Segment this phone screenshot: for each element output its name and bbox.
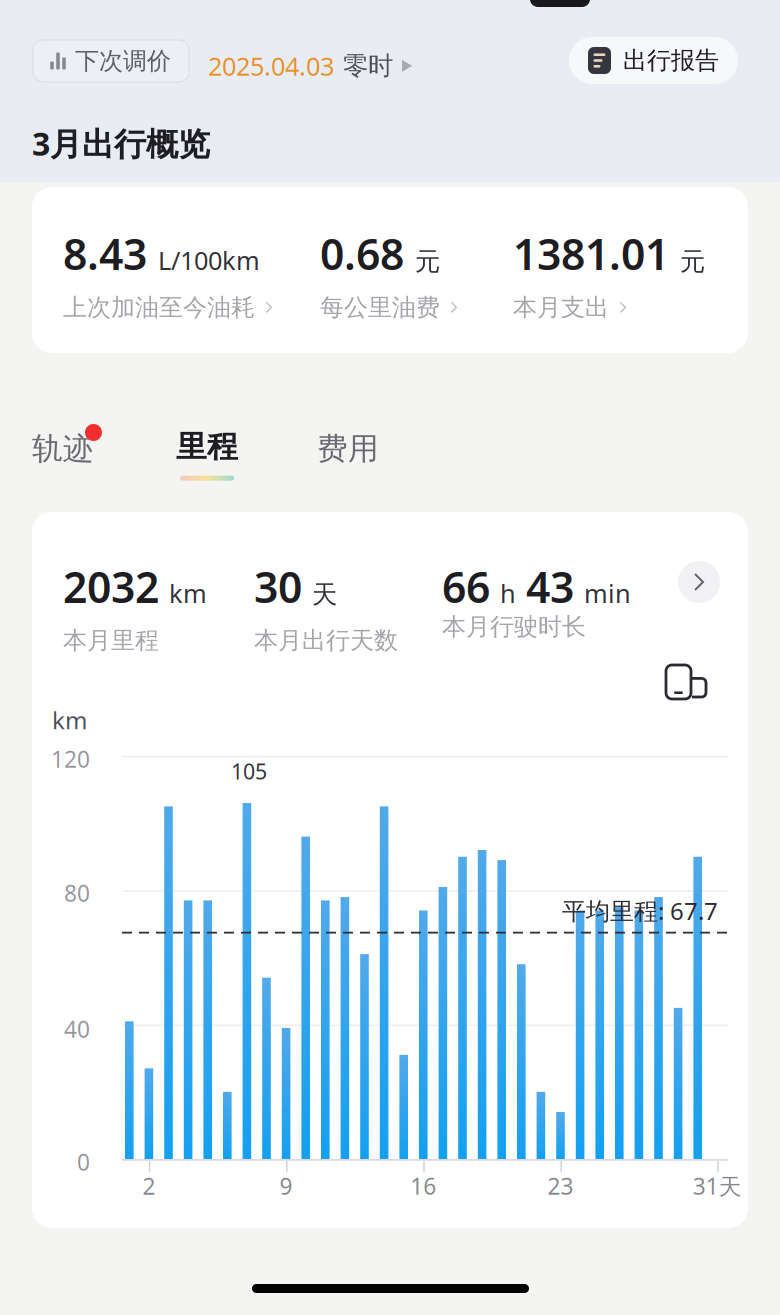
staticText: 平均里程: 67.7: [562, 895, 718, 926]
button[interactable]: 里程: [176, 428, 238, 481]
button[interactable]: 下次调价: [33, 40, 189, 82]
staticText: 40: [64, 1014, 90, 1044]
button[interactable]: 8.43: [63, 225, 273, 322]
button[interactable]: 1381.01: [513, 225, 705, 322]
staticText: 0.68: [320, 225, 404, 282]
button[interactable]: 更多: [678, 561, 720, 603]
staticText: 出行报告: [623, 46, 719, 75]
staticText: 43: [526, 558, 574, 615]
button[interactable]: 轨迹: [32, 424, 102, 468]
staticText: 下次调价: [75, 46, 171, 76]
staticText: km: [169, 576, 207, 610]
staticText: 本月出行天数: [254, 626, 398, 655]
staticText: 元: [680, 246, 705, 277]
staticText: 轨迹: [32, 430, 94, 468]
staticText: km: [52, 704, 87, 736]
staticText: 66: [442, 558, 490, 615]
staticText: h: [500, 576, 516, 610]
staticText: 23: [547, 1171, 573, 1201]
staticText: min: [584, 576, 631, 610]
staticText: 本月里程: [63, 626, 159, 655]
staticText: 105: [231, 757, 267, 785]
staticText: 16: [410, 1171, 436, 1201]
button[interactable]: 旋转屏幕: [666, 665, 710, 701]
button[interactable]: 2025.04.03: [208, 49, 412, 83]
button[interactable]: 0.68: [320, 225, 458, 322]
staticText: L/100km: [158, 243, 260, 277]
staticText: 1381.01: [513, 225, 669, 282]
staticText: 里程: [176, 428, 238, 466]
staticText: 每公里油费: [320, 293, 440, 322]
button[interactable]: 出行报告: [569, 37, 738, 84]
staticText: 元: [415, 246, 440, 277]
staticText: 3月出行概览: [32, 122, 210, 164]
button[interactable]: 费用: [317, 430, 379, 468]
staticText: 费用: [317, 430, 379, 468]
staticText: 天: [312, 579, 337, 610]
staticText: 本月行驶时长: [442, 612, 586, 641]
staticText: 120: [51, 744, 90, 774]
staticText: 2: [142, 1171, 155, 1201]
staticText: 上次加油至今油耗: [63, 293, 255, 322]
staticText: 本月支出: [513, 293, 609, 322]
staticText: 零时: [343, 50, 393, 81]
staticText: 80: [64, 878, 90, 908]
staticText: 0: [77, 1147, 90, 1177]
staticText: 2032: [63, 558, 159, 615]
staticText: 30: [254, 558, 302, 615]
staticText: 8.43: [63, 225, 147, 282]
staticText: 2025.04.03: [208, 49, 334, 83]
staticText: 31天: [693, 1171, 742, 1201]
staticText: 9: [280, 1171, 293, 1201]
